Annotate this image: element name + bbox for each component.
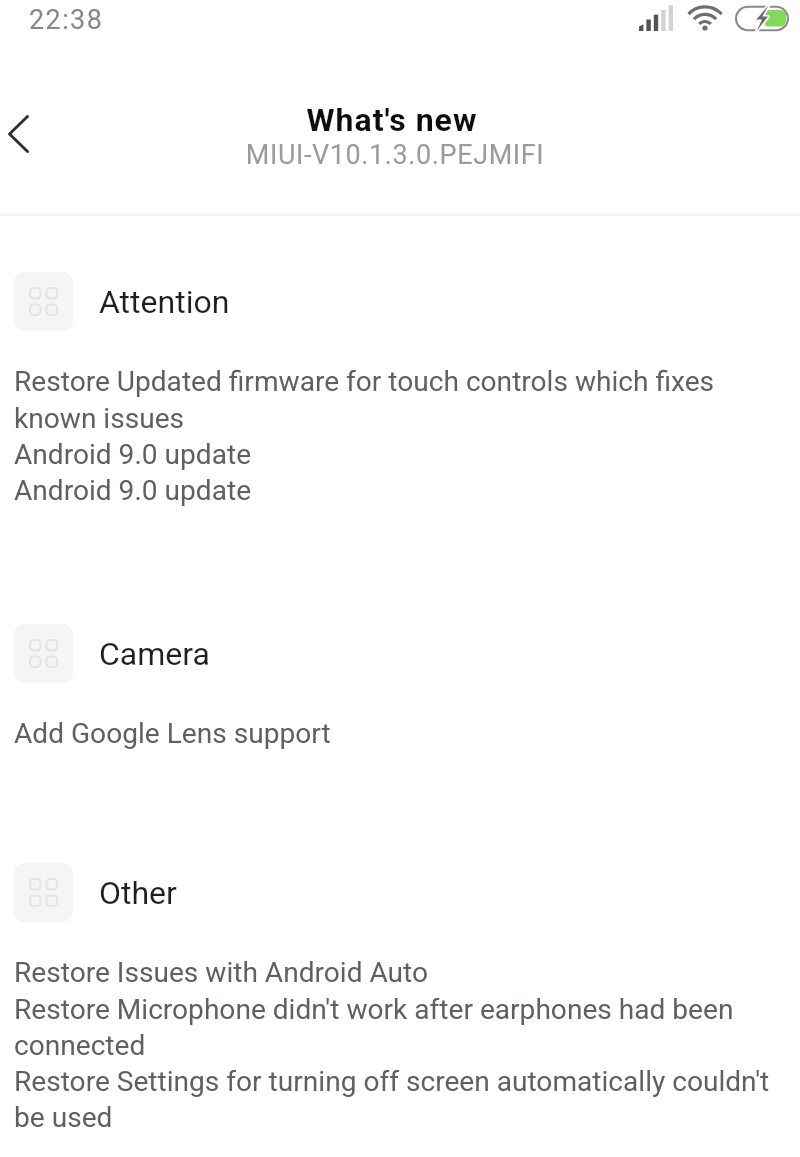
staticText: Camera (99, 635, 210, 673)
button[interactable]: Attention (0, 272, 800, 331)
button[interactable]: Back (0, 98, 54, 170)
staticText: Other (99, 874, 177, 912)
staticText: Attention (99, 283, 230, 321)
staticText: MIUI-V10.1.3.0.PEJMIFI (0, 139, 795, 171)
staticText: Add Google Lens support (14, 717, 784, 750)
staticText: 22:38 (29, 4, 104, 36)
button[interactable]: Camera (0, 624, 800, 683)
staticText: Restore Issues with Android Auto Restore… (14, 956, 784, 1134)
staticText: Restore Updated firmware for touch contr… (14, 365, 784, 507)
staticText: What's new (0, 101, 792, 139)
button[interactable]: Other (0, 863, 800, 922)
